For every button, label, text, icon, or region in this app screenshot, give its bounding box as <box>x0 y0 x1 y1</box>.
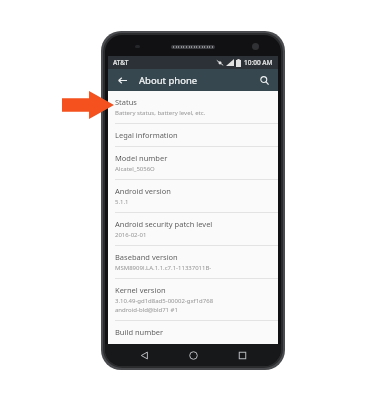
staticText: Kernel version <box>115 285 166 295</box>
button[interactable]: Android version <box>108 180 278 212</box>
button[interactable]: Build number <box>108 321 278 344</box>
staticText: Baseband version <box>115 252 178 262</box>
staticText: Build number <box>115 327 164 337</box>
staticText: 3.10.49-gd1d8ad5-00002-gxf1d768 <box>115 297 214 305</box>
button[interactable]: Home <box>183 345 203 365</box>
staticText: Battery status, battery level, etc. <box>115 109 206 117</box>
button[interactable]: Back <box>114 72 130 88</box>
staticText: MSM8909l.LA.1.1.c7.1-11337011B- <box>115 264 212 272</box>
staticText: 5.1.1 <box>115 198 129 206</box>
staticText: 10:00 AM <box>244 58 273 67</box>
button[interactable]: Recent apps <box>232 345 252 365</box>
staticText: android-bld@bld71 #1 <box>115 306 178 314</box>
button[interactable]: Status <box>108 91 278 123</box>
staticText: AT&T <box>113 58 129 67</box>
staticText: Legal information <box>115 130 178 140</box>
button[interactable]: Baseband version <box>108 246 278 278</box>
staticText: Android version <box>115 186 171 196</box>
staticText: Android security patch level <box>115 219 213 229</box>
button[interactable]: Back <box>134 345 154 365</box>
button[interactable]: Android security patch level <box>108 213 278 245</box>
button[interactable]: Model number <box>108 147 278 179</box>
staticText: Model number <box>115 153 168 163</box>
staticText: About phone <box>139 74 198 87</box>
button[interactable]: Legal information <box>108 124 278 146</box>
button[interactable]: Kernel version <box>108 279 278 320</box>
button[interactable]: Search <box>256 72 272 88</box>
staticText: 2016-02-01 <box>115 231 147 239</box>
staticText: Status <box>115 97 137 107</box>
staticText: Alcatel_5056O <box>115 165 155 173</box>
